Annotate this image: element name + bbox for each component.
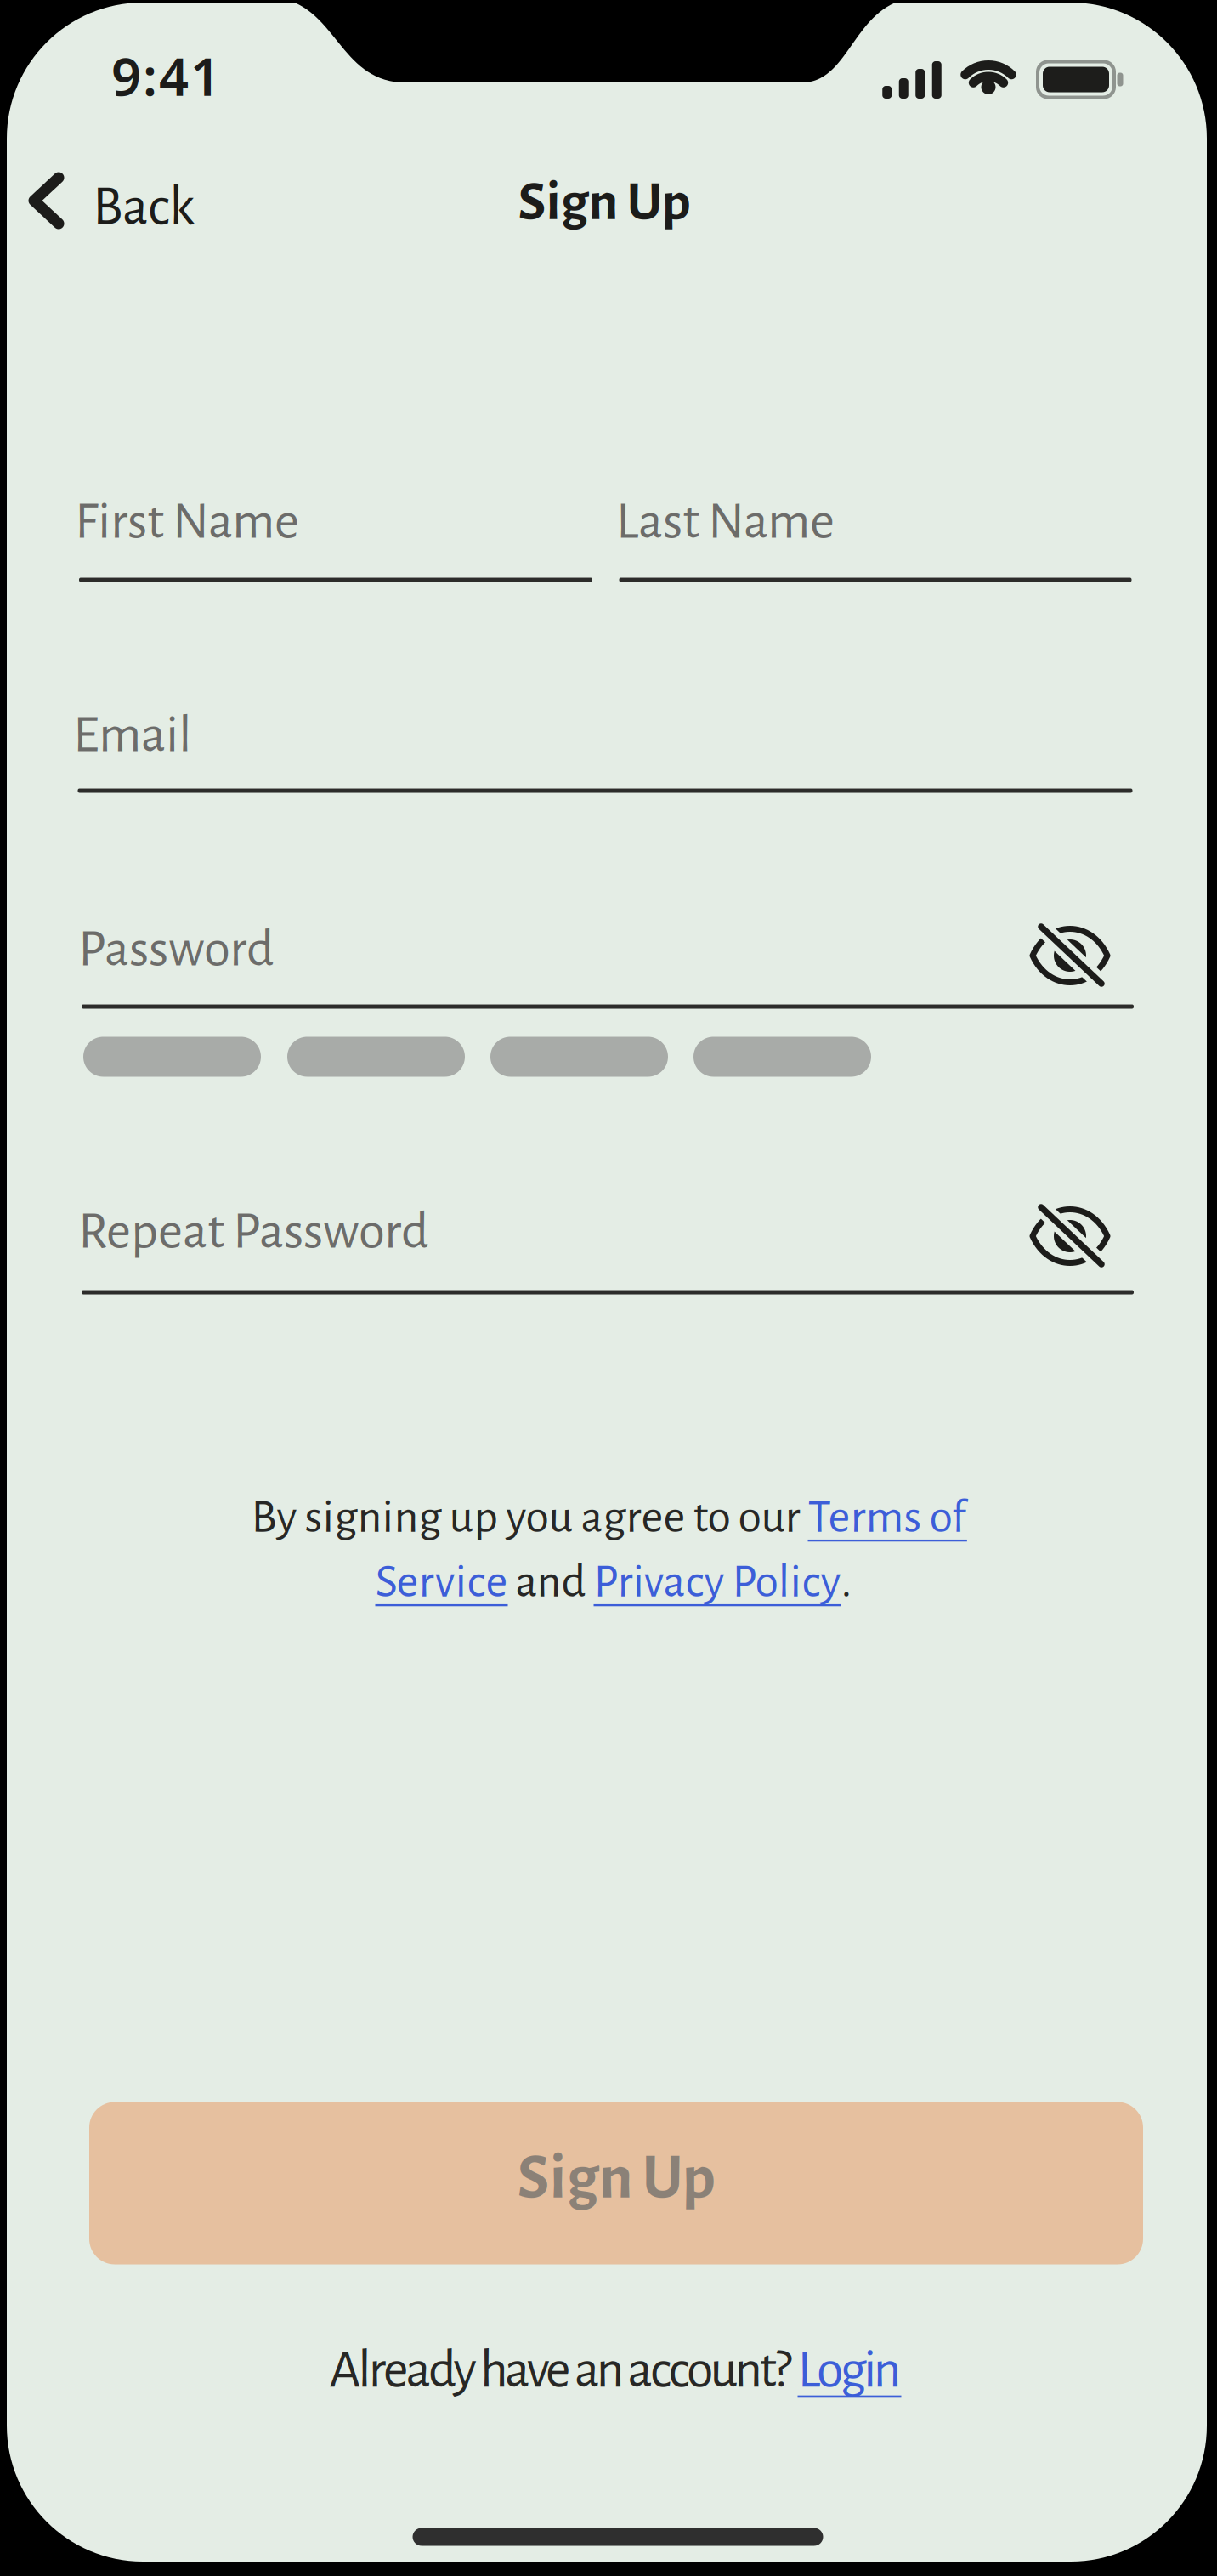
staticText: Login bbox=[798, 2343, 901, 2397]
staticText: Service bbox=[375, 1558, 508, 1606]
staticText: Privacy Policy bbox=[594, 1558, 841, 1606]
staticText: By signing up you agree to our bbox=[251, 1494, 808, 1541]
staticText: Terms of bbox=[808, 1494, 966, 1541]
staticText: Password bbox=[78, 922, 275, 976]
staticText: . bbox=[841, 1558, 852, 1606]
staticText: Email bbox=[73, 708, 192, 762]
staticText: 9:41 bbox=[111, 41, 220, 110]
button[interactable]: Privacy Policy bbox=[594, 1558, 841, 1606]
button[interactable]: Sign Up bbox=[89, 2102, 1143, 2264]
staticText: Already have an account? bbox=[329, 2343, 798, 2397]
staticText: Repeat Password bbox=[78, 1205, 429, 1258]
button[interactable]: Show repeated password bbox=[1030, 1203, 1115, 1268]
staticText: Back bbox=[93, 179, 195, 235]
staticText: Sign Up bbox=[517, 2146, 715, 2210]
staticText: First Name bbox=[75, 495, 299, 548]
button[interactable]: Show password bbox=[1030, 922, 1115, 987]
button[interactable]: Service bbox=[375, 1558, 508, 1606]
button[interactable]: Terms of bbox=[808, 1494, 966, 1541]
staticText: and bbox=[508, 1558, 594, 1606]
button[interactable]: Login bbox=[798, 2343, 901, 2397]
staticText: Last Name bbox=[616, 495, 835, 548]
button[interactable]: Back bbox=[32, 176, 211, 237]
staticText: Sign Up bbox=[518, 174, 691, 230]
